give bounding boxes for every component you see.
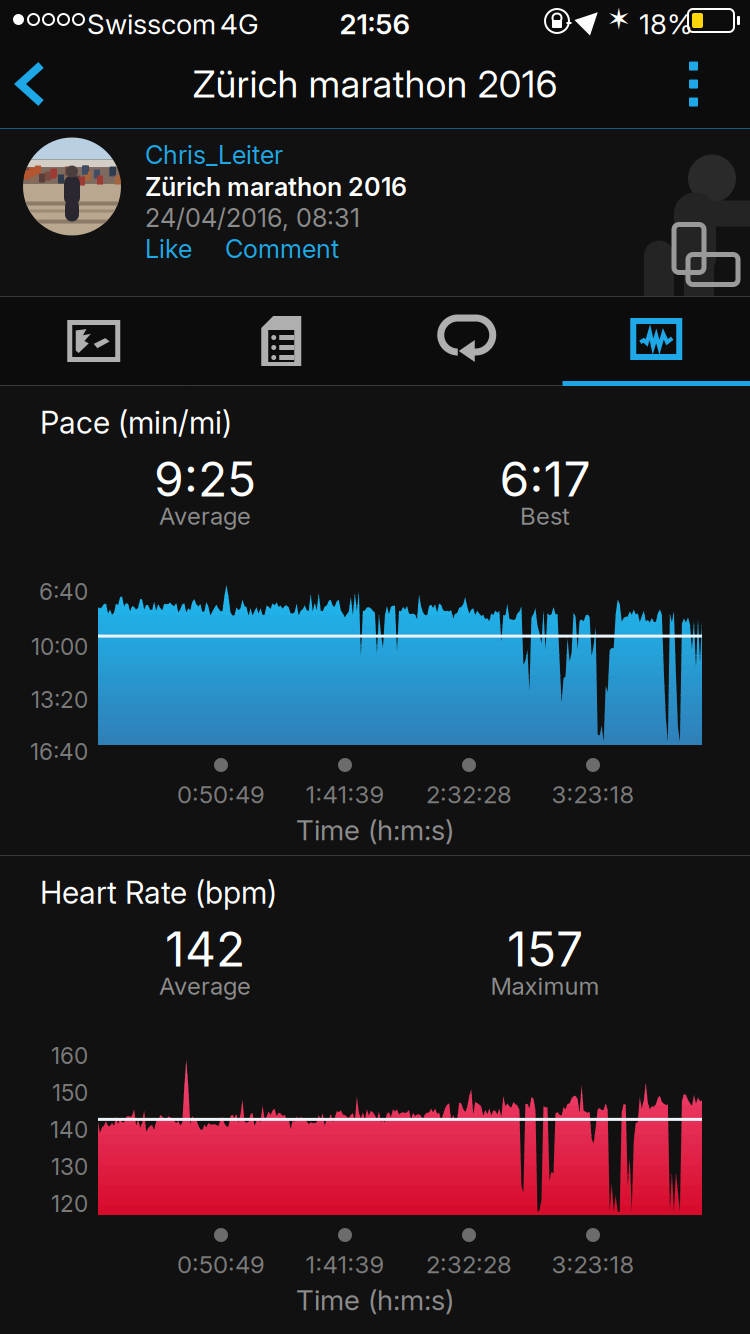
button[interactable]: Details <box>187 297 375 386</box>
staticText: Swisscom <box>87 7 216 41</box>
staticText: 1:41:39 <box>305 780 384 809</box>
staticText: 3:23:18 <box>551 1250 634 1279</box>
button[interactable]: Like <box>145 233 192 264</box>
button[interactable]: More options <box>659 40 750 128</box>
staticText: Average <box>159 501 251 530</box>
staticText: 150 <box>52 1079 88 1106</box>
staticText: Best <box>520 501 570 530</box>
staticText: 1:41:39 <box>305 1250 384 1279</box>
staticText: 6:17 <box>499 450 590 508</box>
button[interactable]: Back <box>0 40 65 128</box>
staticText: 24/04/2016, 08:31 <box>145 202 360 233</box>
button[interactable]: Rotate screen <box>674 224 746 286</box>
staticText: 0:50:49 <box>177 1250 265 1279</box>
staticText: Zürich marathon 2016 <box>145 171 407 202</box>
staticText: Pace (min/mi) <box>40 404 232 441</box>
staticText: Chris_Leiter <box>145 139 283 170</box>
staticText: 142 <box>165 920 245 978</box>
staticText: 10:00 <box>31 633 88 660</box>
staticText: 140 <box>50 1116 88 1143</box>
button[interactable]: Laps <box>375 297 562 386</box>
button[interactable]: Map <box>0 297 187 386</box>
staticText: Average <box>159 971 251 1000</box>
staticText: 157 <box>507 920 583 978</box>
staticText: ✶ <box>606 2 631 36</box>
staticText: Time (h:m:s) <box>296 1283 454 1317</box>
staticText: 0:50:49 <box>177 780 265 809</box>
staticText: Zürich marathon 2016 <box>192 61 557 107</box>
staticText: 9:25 <box>154 450 256 508</box>
staticText: 130 <box>51 1153 88 1180</box>
staticText: 2:32:28 <box>426 1250 512 1279</box>
staticText: 3:23:18 <box>551 780 634 809</box>
staticText: 4G <box>220 7 259 41</box>
staticText: 160 <box>51 1042 88 1069</box>
staticText: Heart Rate (bpm) <box>40 874 277 911</box>
staticText: Like <box>145 233 192 264</box>
staticText: 13:20 <box>31 686 88 713</box>
staticText: 120 <box>51 1190 88 1217</box>
button[interactable]: Comment <box>225 233 339 264</box>
staticText: 18% <box>639 7 693 41</box>
staticText: 6:40 <box>39 578 88 605</box>
staticText: Comment <box>225 233 339 264</box>
staticText: 16:40 <box>30 738 88 765</box>
staticText: 21:56 <box>339 7 410 41</box>
staticText: Time (h:m:s) <box>296 813 454 847</box>
staticText: 2:32:28 <box>426 780 512 809</box>
staticText: Maximum <box>490 971 599 1000</box>
button[interactable]: Charts <box>562 297 750 386</box>
